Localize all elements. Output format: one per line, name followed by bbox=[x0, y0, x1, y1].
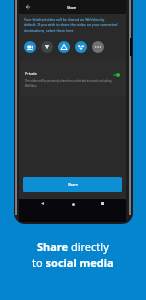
staticText: Your finished video will be shared on We… bbox=[24, 17, 118, 33]
button[interactable]: Private bbox=[21, 60, 126, 96]
button[interactable]: Vimeo bbox=[41, 41, 53, 53]
button[interactable]: Privacy toggle bbox=[113, 73, 120, 77]
staticText: Private bbox=[25, 71, 37, 76]
staticText: to social media bbox=[32, 255, 114, 270]
button[interactable]: Share bbox=[23, 177, 122, 192]
button[interactable]: Google Drive bbox=[58, 41, 70, 53]
button[interactable]: WeVideo bbox=[24, 41, 36, 53]
staticText: Share bbox=[67, 5, 77, 10]
button[interactable]: Home bbox=[72, 203, 75, 206]
staticText: The video will be privately shared on un… bbox=[25, 79, 112, 88]
staticText: Share bbox=[68, 182, 78, 187]
button[interactable]: Back bbox=[24, 3, 32, 11]
button[interactable]: More bbox=[92, 41, 104, 53]
button[interactable]: Dropbox bbox=[75, 41, 87, 53]
staticText: Share directly bbox=[37, 239, 109, 254]
button[interactable]: Back bbox=[41, 202, 44, 205]
